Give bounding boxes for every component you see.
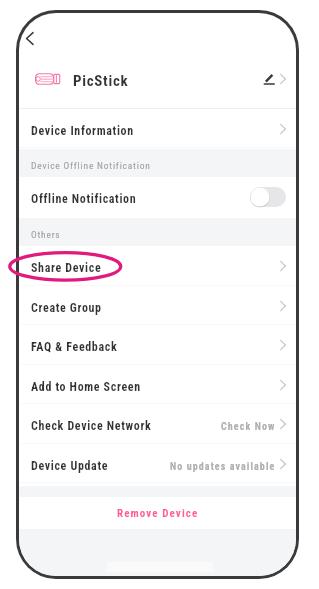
staticText: Offline Notification [31, 192, 137, 206]
button[interactable]: Offline Notification [19, 177, 296, 217]
button[interactable]: Add to Home Screen [19, 365, 296, 405]
button[interactable]: Create Group [19, 286, 296, 326]
staticText: Share Device [31, 261, 102, 275]
staticText: Others [31, 229, 61, 240]
button[interactable]: Remove Device [19, 497, 296, 530]
staticText: Device Offline Notification [31, 160, 151, 171]
button[interactable]: Offline notification toggle [250, 187, 286, 207]
staticText: FAQ & Feedback [31, 340, 118, 354]
button[interactable]: Device Update [19, 444, 296, 484]
staticText: Remove Device [117, 507, 199, 520]
staticText: PicStick [73, 72, 129, 90]
staticText: Check Device Network [31, 419, 152, 433]
staticText: Device Update [31, 459, 109, 473]
staticText: Device Information [31, 124, 134, 138]
button[interactable]: Check Device Network [19, 404, 296, 444]
staticText: Create Group [31, 301, 102, 315]
button[interactable]: FAQ & Feedback [19, 325, 296, 365]
button[interactable]: PicStick [19, 62, 296, 95]
button[interactable]: Device Information [19, 109, 296, 148]
button[interactable]: Back [19, 26, 40, 50]
button[interactable]: Share Device [19, 246, 296, 286]
button[interactable]: Edit name [262, 72, 275, 86]
staticText: Check Now [221, 421, 276, 433]
staticText: Add to Home Screen [31, 380, 141, 394]
staticText: No updates available [170, 461, 276, 473]
